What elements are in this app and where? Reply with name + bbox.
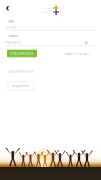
staticText: Passwort vergessen?: [63, 52, 90, 55]
staticText: Email: [6, 24, 16, 30]
button[interactable]: Registrieren: [8, 82, 34, 90]
staticText: Jetzt anmelden: [10, 52, 33, 55]
staticText: Passwort: [7, 34, 18, 38]
staticText: Account wechseln: [8, 70, 33, 73]
staticText: ‹: [5, 0, 9, 14]
button[interactable]: Passwort vergessen?: [63, 52, 90, 55]
staticText: ◉: [84, 40, 87, 45]
staticText: Passwort: [5, 39, 21, 45]
staticText: KIRCHE: [47, 9, 52, 11]
staticText: DEUTSCHLAND: [41, 11, 52, 13]
staticText: Registrieren: [12, 84, 30, 88]
button[interactable]: Jetzt anmelden: [7, 50, 37, 57]
button[interactable]: Show password: [83, 40, 88, 45]
staticText: E-Mail: [7, 20, 14, 23]
staticText: EVANGELISCHE: [41, 7, 52, 9]
button[interactable]: Back: [3, 2, 12, 11]
button[interactable]: Account wechseln: [8, 70, 33, 73]
